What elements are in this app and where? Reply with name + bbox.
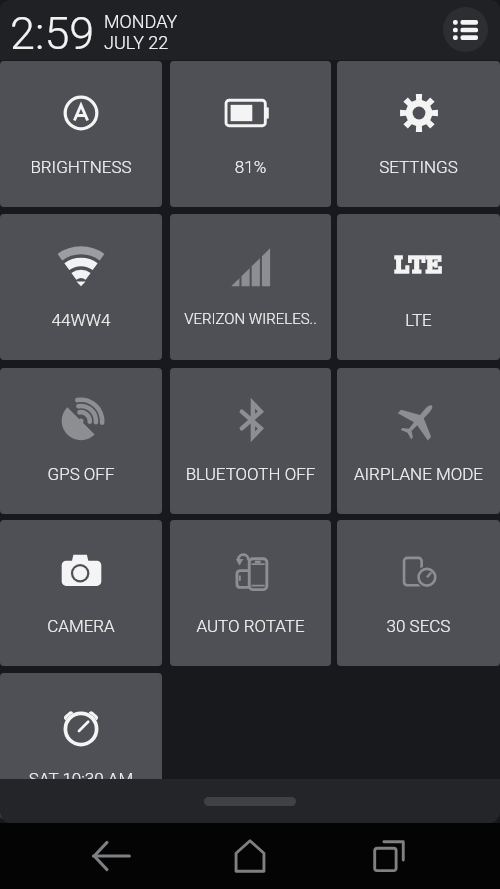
staticText: LTE bbox=[337, 310, 500, 330]
staticText: LTE bbox=[394, 250, 443, 282]
staticText: 2:59 bbox=[10, 7, 95, 60]
button[interactable]: GPS OFF bbox=[0, 368, 162, 514]
button[interactable]: 44WW4 bbox=[0, 214, 162, 360]
staticText: BRIGHTNESS bbox=[0, 157, 162, 177]
staticText: 44WW4 bbox=[0, 310, 162, 330]
staticText: CAMERA bbox=[0, 616, 162, 636]
button[interactable]: LTE bbox=[337, 214, 500, 360]
staticText: GPS OFF bbox=[0, 464, 162, 484]
staticText: MONDAY bbox=[104, 11, 178, 32]
staticText: AIRPLANE MODE bbox=[337, 464, 500, 484]
staticText: 30 SECS bbox=[337, 616, 500, 636]
staticText: BLUETOOTH OFF bbox=[170, 464, 331, 484]
button[interactable]: Recent apps bbox=[350, 823, 430, 889]
button[interactable]: AIRPLANE MODE bbox=[337, 368, 500, 514]
button[interactable]: BRIGHTNESS bbox=[0, 61, 162, 207]
button[interactable]: 81% bbox=[170, 61, 331, 207]
staticText: AUTO ROTATE bbox=[170, 616, 331, 636]
button[interactable]: BLUETOOTH OFF bbox=[170, 368, 331, 514]
button[interactable]: Quick settings list bbox=[443, 7, 488, 52]
button[interactable]: Back bbox=[71, 823, 151, 889]
button[interactable] bbox=[204, 797, 296, 806]
button[interactable]: SETTINGS bbox=[337, 61, 500, 207]
staticText: VERIZON WIRELES.. bbox=[170, 310, 331, 328]
button[interactable]: AUTO ROTATE bbox=[170, 520, 331, 666]
button[interactable]: Home bbox=[210, 823, 290, 889]
button[interactable]: VERIZON WIRELES.. bbox=[170, 214, 331, 360]
button[interactable]: SAT 10:30 AM bbox=[0, 673, 162, 819]
staticText: JULY 22 bbox=[104, 32, 169, 53]
button[interactable]: 30 SECS bbox=[337, 520, 500, 666]
staticText: 81% bbox=[170, 157, 331, 177]
button[interactable]: CAMERA bbox=[0, 520, 162, 666]
staticText: SETTINGS bbox=[337, 157, 500, 177]
staticText: SAT 10:30 AM bbox=[0, 769, 162, 789]
